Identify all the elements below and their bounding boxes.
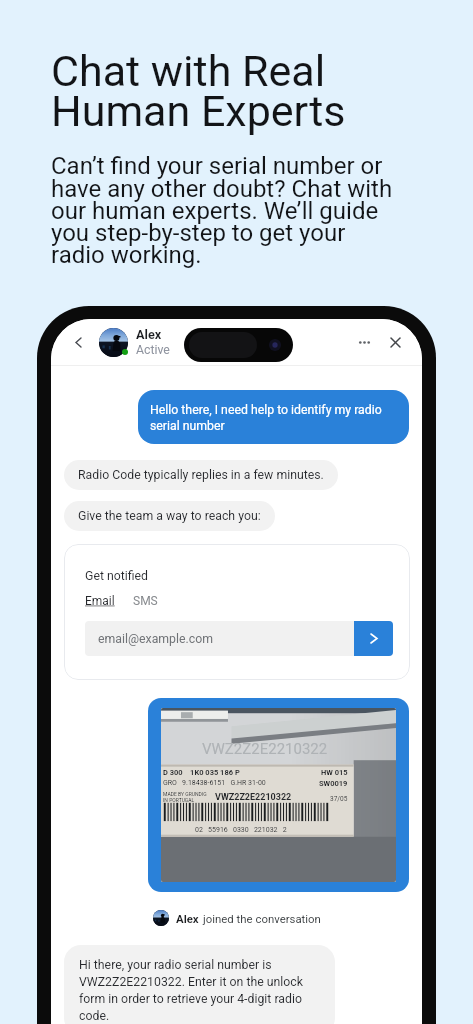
button[interactable]: Back — [68, 332, 88, 352]
staticText: Radio Code typically replies in a few mi… — [78, 468, 324, 482]
staticText: Hello there, I need help to identify my … — [150, 401, 397, 433]
button[interactable]: Email — [85, 594, 115, 608]
staticText: 02 55916 0330 221032 2 — [195, 826, 287, 834]
button[interactable]: Give the team a way to reach you: — [64, 501, 275, 531]
staticText: SW0019 — [319, 779, 348, 788]
staticText: email@example.com — [98, 632, 214, 646]
staticText: MADE BY GRUNDIG — [163, 791, 207, 797]
staticText: Chat with Real Human Experts — [51, 46, 346, 136]
staticText: D 300 1K0 035 186 P — [163, 768, 240, 777]
button[interactable]: Submit — [354, 621, 393, 656]
button[interactable]: Close — [380, 327, 410, 357]
staticText: joined the conversation — [203, 912, 321, 925]
staticText: IN PORTUGAL — [163, 797, 195, 803]
staticText: Give the team a way to reach you: — [78, 509, 261, 523]
button[interactable]: SMS — [133, 594, 158, 608]
button[interactable]: Radio serial number photo — [148, 698, 409, 892]
button[interactable]: Radio Code typically replies in a few mi… — [64, 460, 338, 490]
staticText: HW 015 — [321, 768, 348, 777]
staticText: 37/05 — [330, 795, 348, 803]
staticText: Email — [85, 594, 115, 608]
staticText: GRO 9.18438-6151 G.HR 31-00 — [163, 779, 266, 787]
staticText: Active — [136, 343, 170, 357]
button[interactable]: More options — [349, 327, 379, 357]
staticText: Alex — [136, 327, 162, 342]
button[interactable]: Hi there, your radio serial number is VW… — [64, 945, 335, 1024]
staticText: VWZ2Z2E2210322 — [215, 792, 292, 803]
staticText: Get notified — [85, 569, 149, 583]
staticText: Can’t find your serial number or have an… — [51, 152, 398, 268]
staticText: VWZ2Z2E2210322 — [202, 740, 328, 758]
staticText: SMS — [133, 594, 158, 608]
staticText: Alex — [176, 912, 199, 925]
button[interactable]: Hello there, I need help to identify my … — [138, 390, 409, 444]
staticText: Hi there, your radio serial number is VW… — [79, 956, 320, 1024]
